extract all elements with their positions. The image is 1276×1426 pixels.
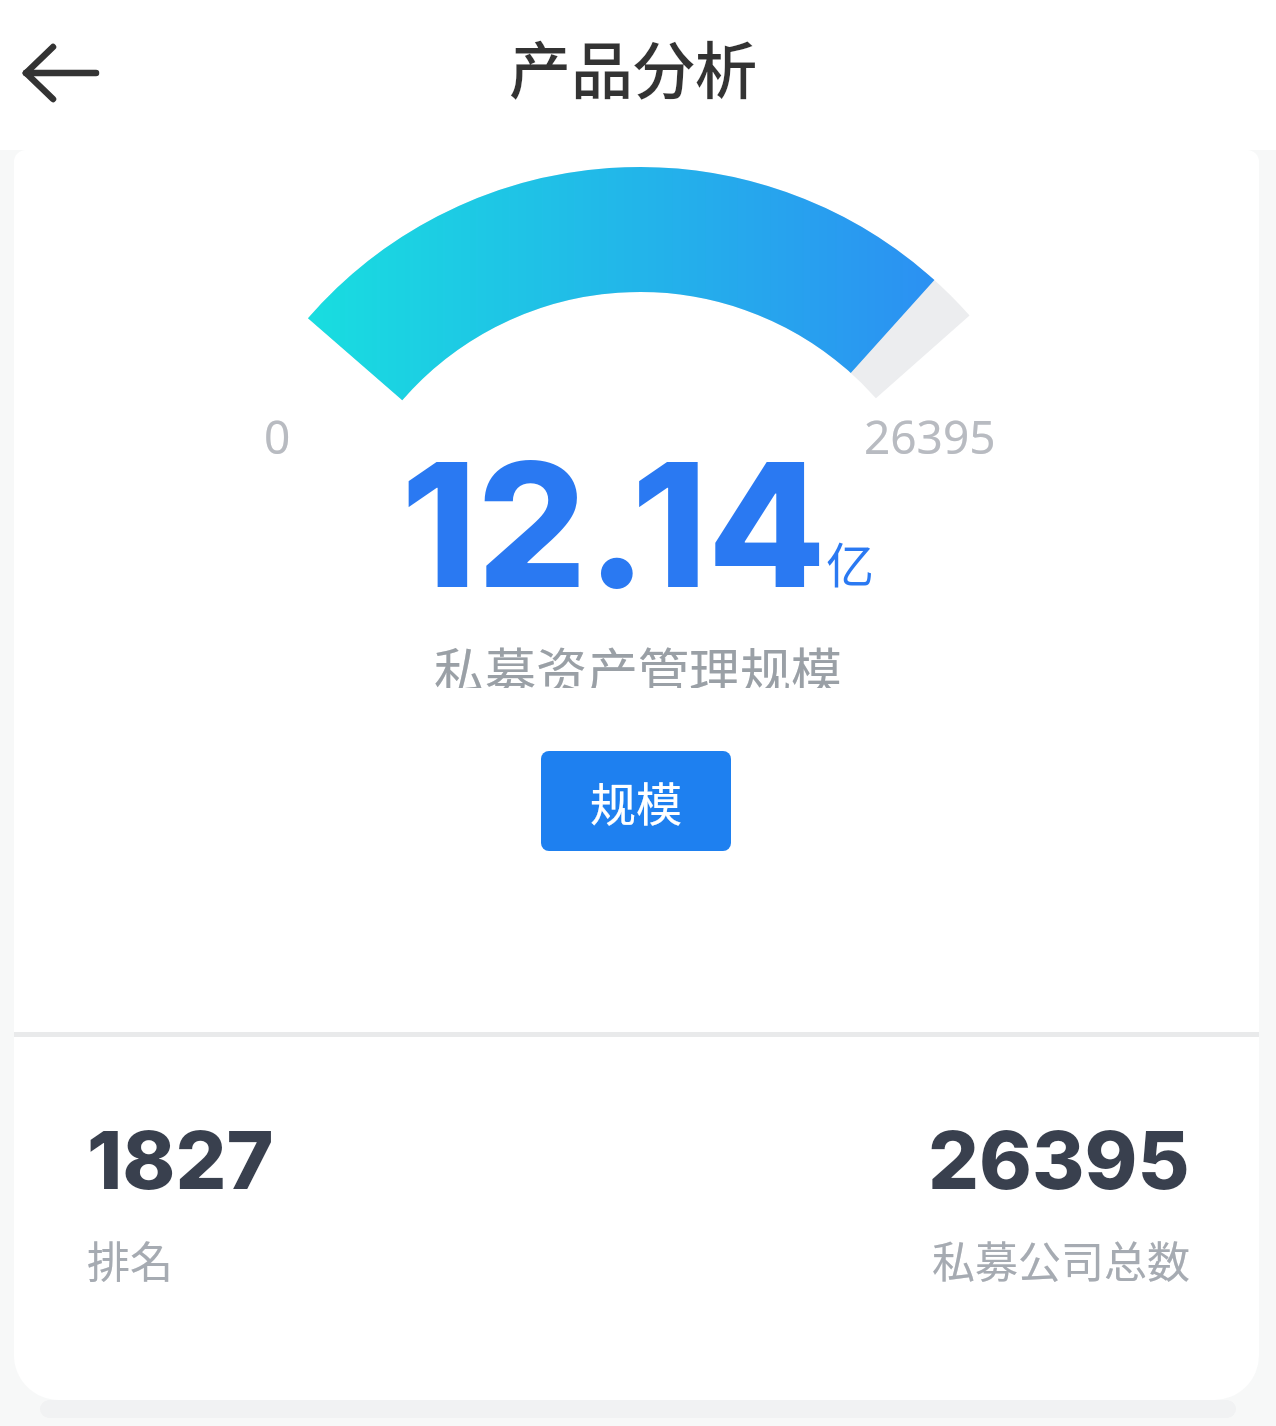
- staticText: 排名: [87, 1228, 173, 1290]
- button[interactable]: 1827: [87, 1111, 274, 1290]
- button[interactable]: 26395: [928, 1111, 1190, 1290]
- staticText: 0: [264, 405, 291, 457]
- button[interactable]: [6, 25, 116, 120]
- button[interactable]: 规模: [541, 751, 731, 851]
- staticText: 12.14: [401, 420, 826, 608]
- staticText: 产品分析: [509, 22, 758, 112]
- staticText: 26395: [864, 405, 996, 457]
- staticText: 1827: [87, 1111, 274, 1208]
- staticText: 26395: [928, 1111, 1190, 1208]
- staticText: 亿: [826, 527, 875, 597]
- staticText: 私募资产管理规模: [434, 632, 843, 688]
- staticText: 规模: [590, 768, 682, 835]
- staticText: 私募公司总数: [932, 1228, 1190, 1290]
